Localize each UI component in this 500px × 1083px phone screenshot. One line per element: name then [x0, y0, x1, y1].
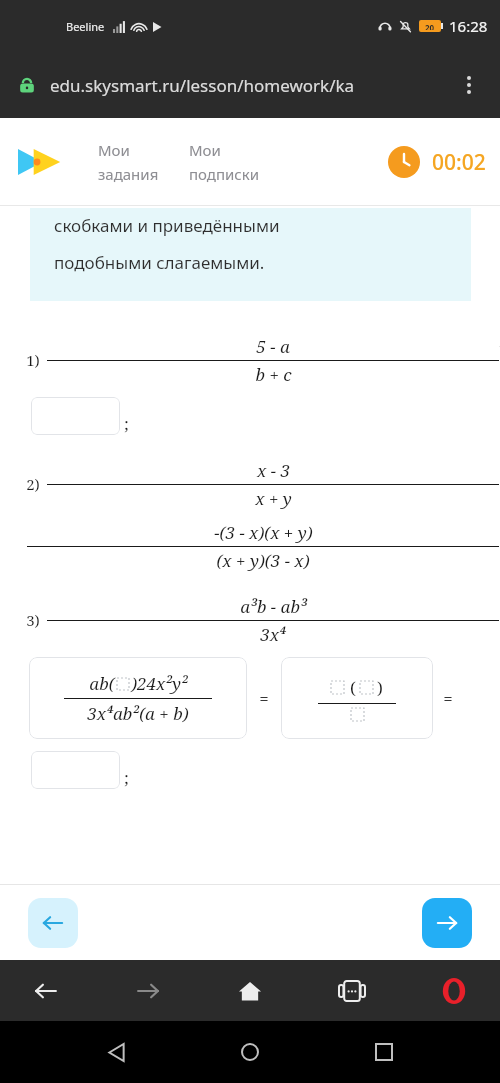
button[interactable]: ( — [281, 657, 433, 739]
staticText: ; — [124, 412, 129, 435]
staticText: задания — [98, 164, 159, 184]
staticText: 3x⁴ab²(a + b) — [87, 702, 189, 725]
staticText: −(3 − x)(x + y) — [214, 521, 313, 544]
staticText: a³b − ab³ — [240, 595, 307, 618]
button[interactable] — [31, 397, 120, 435]
staticText: x + y — [255, 487, 292, 510]
button[interactable]: Мои — [98, 140, 159, 184]
staticText: = — [443, 687, 453, 710]
button[interactable]: Home — [230, 971, 270, 1011]
staticText: (x + y)(3 − x) — [216, 549, 310, 572]
staticText: ) — [377, 676, 383, 699]
button[interactable]: Previous — [28, 898, 78, 948]
staticText: = — [259, 687, 269, 710]
button[interactable]: Next — [422, 898, 472, 948]
staticText: Мои — [189, 140, 221, 160]
button[interactable]: ab( — [29, 657, 247, 739]
button[interactable]: Мои — [189, 140, 260, 184]
other: Secure connection — [18, 76, 36, 94]
staticText: Beeline — [66, 19, 105, 34]
staticText: b + c — [255, 363, 292, 386]
staticText: ( — [350, 676, 356, 699]
staticText: ; — [124, 766, 129, 789]
staticText: x − 3 — [257, 459, 290, 482]
staticText: скобками и приведёнными — [54, 214, 280, 237]
button[interactable]: More options — [456, 72, 482, 98]
staticText: 5 − a — [256, 335, 290, 358]
button[interactable]: Tabs — [332, 971, 372, 1011]
button[interactable]: Recents — [364, 1032, 404, 1072]
staticText: 20 — [425, 22, 435, 30]
button[interactable]: 00:02 — [388, 146, 486, 178]
button[interactable]: Home — [230, 1032, 270, 1072]
staticText: )24x²y² — [131, 672, 188, 695]
button[interactable]: Skysmart logo — [16, 145, 72, 179]
staticText: 00:02 — [432, 148, 486, 177]
staticText: 3) — [26, 610, 40, 630]
staticText: 3x⁴ — [260, 623, 286, 646]
staticText: 1) — [26, 350, 40, 370]
button[interactable] — [31, 751, 120, 789]
staticText: Мои — [98, 140, 130, 160]
staticText: edu.skysmart.ru/lesson/homework/ka — [50, 74, 456, 97]
button[interactable]: Back — [26, 971, 66, 1011]
staticText: 2) — [26, 474, 40, 494]
staticText: подобными слагаемыми. — [54, 251, 265, 274]
staticText: 16:28 — [449, 16, 488, 36]
button[interactable]: Back — [96, 1032, 136, 1072]
staticText: ab( — [89, 672, 115, 695]
staticText: подписки — [189, 164, 260, 184]
button[interactable]: Forward — [128, 971, 168, 1011]
button[interactable]: Opera menu — [434, 971, 474, 1011]
